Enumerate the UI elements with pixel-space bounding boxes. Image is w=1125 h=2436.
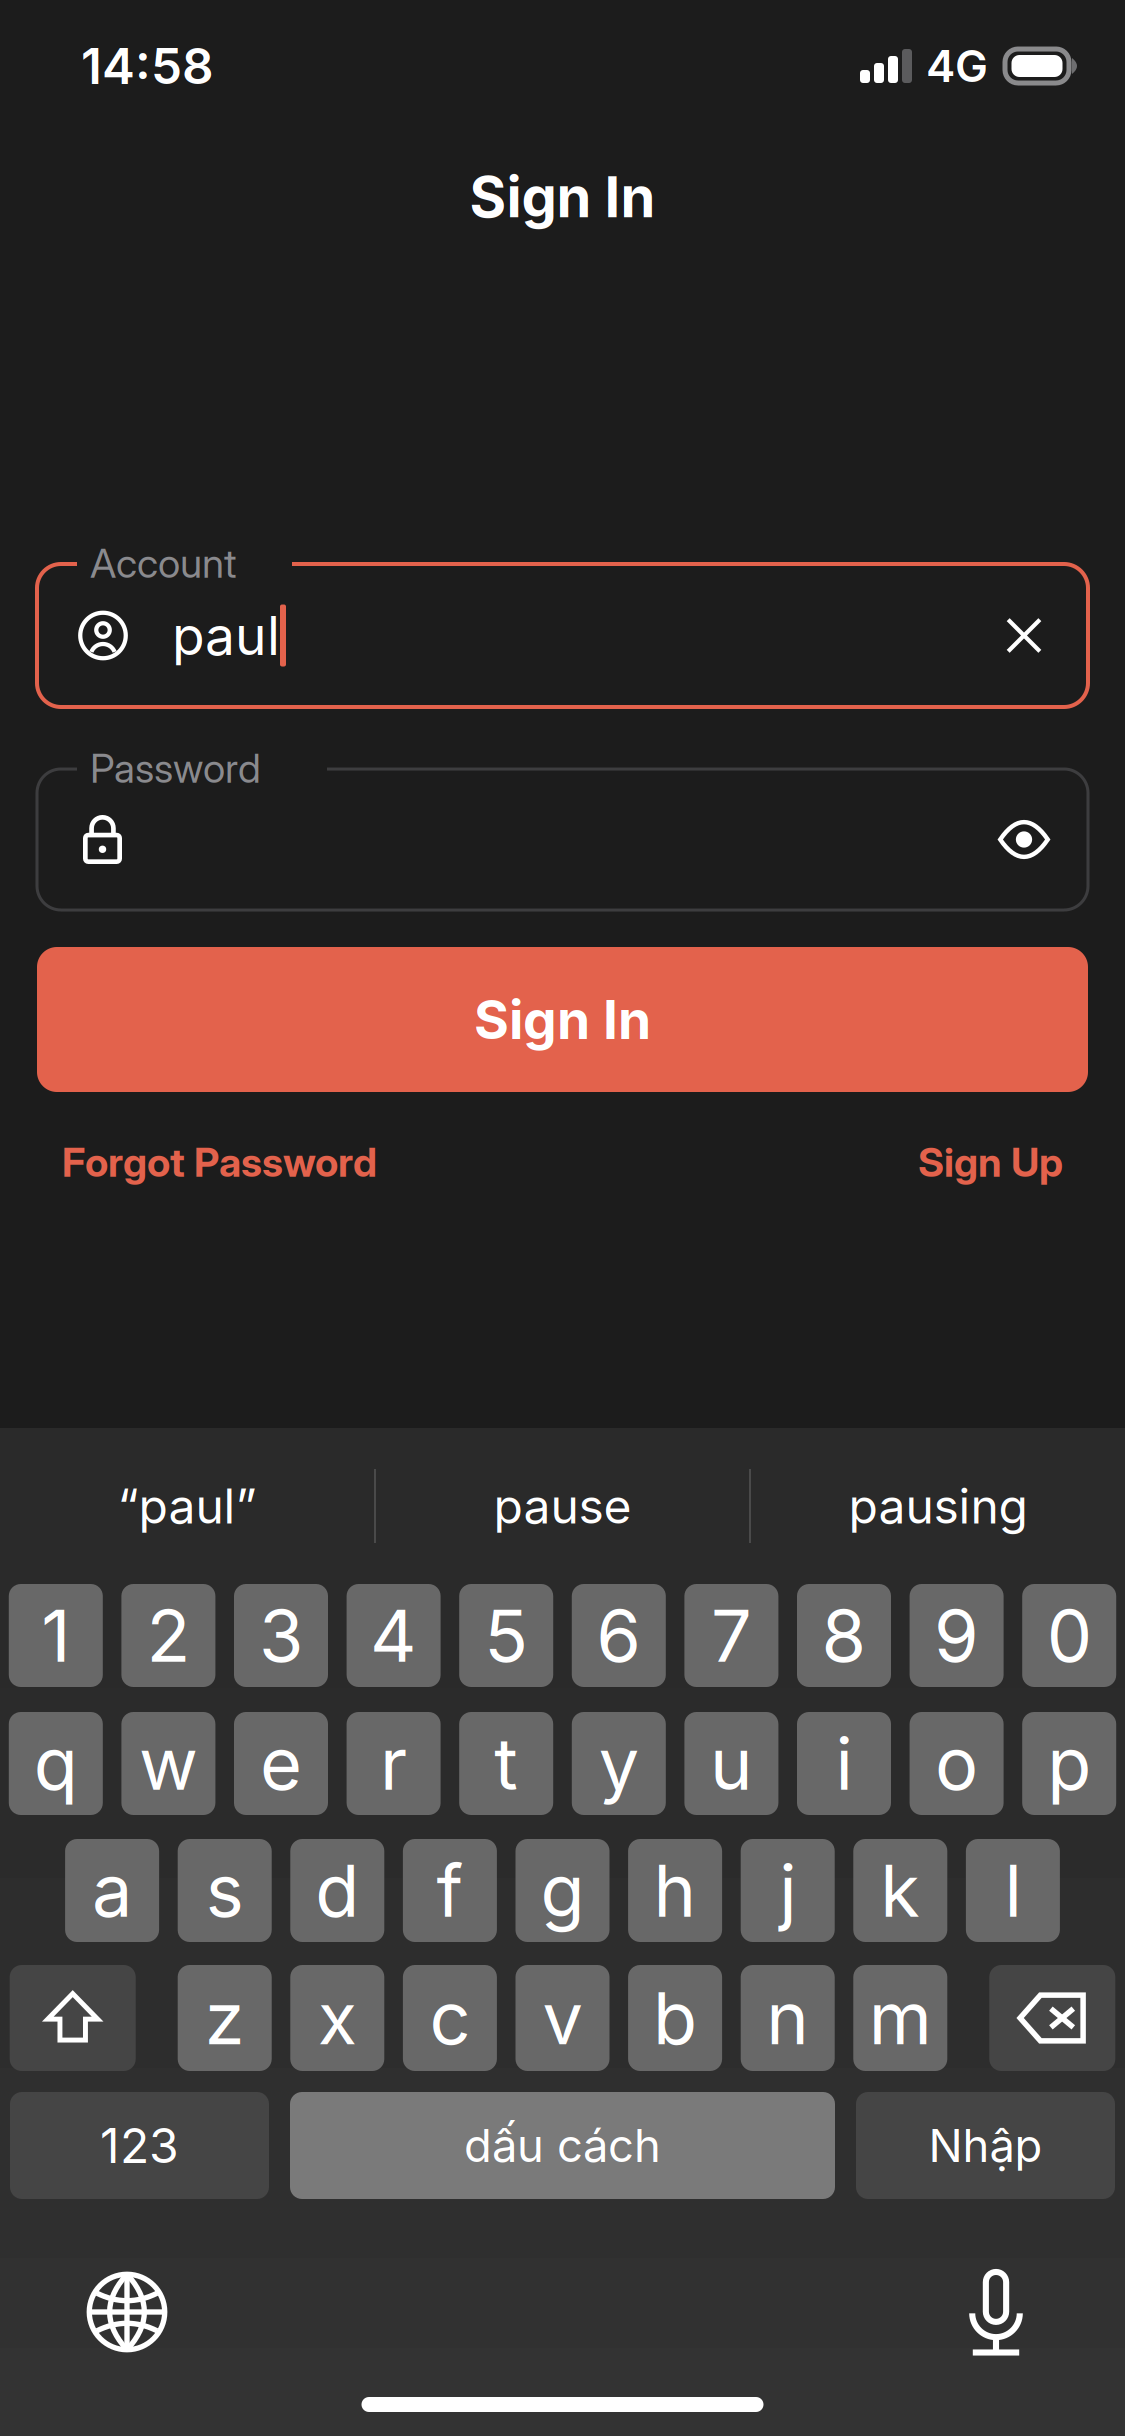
staticText: z	[205, 1974, 245, 2061]
staticText: 2	[146, 1592, 190, 1679]
staticText: c	[429, 1974, 470, 2061]
button[interactable]: Next keyboard	[86, 2271, 168, 2353]
staticText: 123	[100, 2116, 179, 2175]
staticText: w	[139, 1720, 198, 1807]
button[interactable]: i	[797, 1712, 891, 1815]
staticText: g	[540, 1847, 584, 1934]
button[interactable]: p	[1022, 1712, 1116, 1815]
button[interactable]: f	[403, 1839, 497, 1942]
staticText: h	[654, 1847, 697, 1934]
button[interactable]: u	[684, 1712, 778, 1815]
staticText: a	[92, 1847, 132, 1934]
button[interactable]: Sign Up	[918, 1120, 1063, 1204]
button[interactable]: Dictate	[967, 2267, 1025, 2357]
staticText: e	[260, 1720, 302, 1807]
button[interactable]: 123	[10, 2092, 269, 2199]
staticText: Sign In	[474, 987, 651, 1052]
button[interactable]: c	[403, 1965, 497, 2071]
button[interactable]: l	[966, 1839, 1060, 1942]
staticText: u	[710, 1720, 753, 1807]
button[interactable]: v	[515, 1965, 609, 2071]
staticText: Sign In	[469, 163, 655, 231]
staticText: 9	[934, 1592, 979, 1679]
staticText: t	[494, 1720, 518, 1807]
button[interactable]: 8	[797, 1584, 891, 1687]
staticText: Forgot Password	[62, 1138, 377, 1186]
staticText: 1	[41, 1592, 70, 1679]
staticText: 4G	[926, 39, 988, 93]
button[interactable]: e	[234, 1712, 328, 1815]
staticText: Account	[90, 539, 237, 587]
staticText: v	[542, 1974, 582, 2061]
button[interactable]: a	[65, 1839, 159, 1942]
staticText: f	[436, 1847, 463, 1934]
button[interactable]: m	[853, 1965, 947, 2071]
button[interactable]: 9	[910, 1584, 1004, 1687]
button[interactable]: Forgot Password	[62, 1120, 377, 1204]
button[interactable]: r	[347, 1712, 441, 1815]
staticText: pause	[493, 1477, 631, 1535]
button[interactable]: 5	[459, 1584, 553, 1687]
button[interactable]: Show password	[998, 821, 1050, 858]
staticText: y	[599, 1720, 639, 1807]
button[interactable]: w	[121, 1712, 215, 1815]
button[interactable]: 0	[1022, 1584, 1116, 1687]
staticText: 6	[596, 1592, 641, 1679]
staticText: x	[318, 1974, 357, 2061]
button[interactable]: y	[572, 1712, 666, 1815]
button[interactable]: Delete	[989, 1965, 1115, 2071]
staticText: 5	[484, 1592, 528, 1679]
button[interactable]: 7	[684, 1584, 778, 1687]
staticText: j	[779, 1847, 796, 1934]
staticText: 0	[1047, 1592, 1092, 1679]
button[interactable]: s	[178, 1839, 272, 1942]
button[interactable]: q	[9, 1712, 103, 1815]
button[interactable]: 6	[572, 1584, 666, 1687]
staticText: 4	[370, 1592, 417, 1679]
button[interactable]: Clear text	[1002, 613, 1046, 657]
staticText: “paul”	[117, 1477, 256, 1535]
staticText: pausing	[848, 1477, 1027, 1535]
staticText: p	[1047, 1720, 1091, 1807]
button[interactable]: k	[853, 1839, 947, 1942]
staticText: n	[766, 1974, 809, 2061]
button[interactable]: h	[628, 1839, 722, 1942]
button[interactable]: dấu cách	[290, 2092, 835, 2199]
staticText: 14:58	[81, 36, 214, 96]
button[interactable]: j	[741, 1839, 835, 1942]
staticText: d	[315, 1847, 359, 1934]
button[interactable]: Nhập	[856, 2092, 1115, 2199]
staticText: dấu cách	[464, 2118, 661, 2173]
staticText: q	[34, 1720, 78, 1807]
staticText: l	[1004, 1847, 1021, 1934]
button[interactable]: z	[178, 1965, 272, 2071]
staticText: 3	[259, 1592, 303, 1679]
staticText: paul	[172, 603, 280, 668]
button[interactable]: pausing	[751, 1428, 1125, 1584]
button[interactable]: 3	[234, 1584, 328, 1687]
staticText: b	[653, 1974, 697, 2061]
button[interactable]: 1	[9, 1584, 103, 1687]
staticText: 7	[711, 1592, 752, 1679]
button[interactable]: d	[290, 1839, 384, 1942]
staticText: Nhập	[928, 2118, 1042, 2173]
button[interactable]: x	[290, 1965, 384, 2071]
staticText: m	[869, 1974, 932, 2061]
button[interactable]: Shift	[10, 1965, 136, 2071]
button[interactable]: o	[910, 1712, 1004, 1815]
button[interactable]: pause	[376, 1428, 749, 1584]
button[interactable]: n	[741, 1965, 835, 2071]
button[interactable]: b	[628, 1965, 722, 2071]
button[interactable]: 4	[347, 1584, 441, 1687]
staticText: k	[880, 1847, 920, 1934]
staticText: Sign Up	[918, 1138, 1063, 1186]
staticText: i	[835, 1720, 852, 1807]
button[interactable]: “paul”	[0, 1428, 374, 1584]
button[interactable]: 2	[121, 1584, 215, 1687]
staticText: r	[380, 1720, 407, 1807]
staticText: o	[935, 1720, 978, 1807]
staticText: Password	[90, 744, 261, 792]
button[interactable]: Sign In	[37, 947, 1088, 1092]
button[interactable]: g	[515, 1839, 609, 1942]
button[interactable]: t	[459, 1712, 553, 1815]
